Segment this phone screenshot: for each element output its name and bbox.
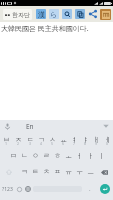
staticText: 2	[17, 141, 20, 146]
button[interactable]: Enter	[96, 179, 113, 199]
staticText: 4	[40, 141, 43, 146]
staticText: ㅕ	[71, 135, 78, 144]
staticText: ㅊ	[43, 167, 50, 176]
staticText: ㅣ	[98, 151, 105, 160]
button[interactable]: ?123	[0, 180, 15, 200]
button[interactable]: More options	[99, 120, 113, 132]
staticText: ㅗ	[65, 151, 72, 160]
button[interactable]: ㅈ	[12, 132, 24, 148]
staticText: ㅔ	[104, 135, 111, 144]
button[interactable]: ㅜ	[74, 164, 85, 180]
staticText: ㄱ	[38, 135, 45, 144]
button[interactable]: ㄹ	[41, 148, 52, 164]
staticText: 大韓民國은 民主共和國이다.	[1, 24, 89, 34]
staticText: 3	[29, 141, 32, 146]
button[interactable]: ㄴ	[19, 148, 30, 164]
staticText: 5	[51, 141, 54, 146]
button[interactable]: Emoji	[15, 180, 24, 200]
staticText: 0	[106, 141, 109, 146]
button[interactable]: Shift	[0, 164, 18, 180]
button[interactable]: ㅎ	[52, 148, 63, 164]
staticText: ㅓ	[76, 151, 83, 160]
button[interactable]: Search	[60, 6, 73, 22]
staticText: ら	[50, 10, 58, 19]
staticText: En	[26, 122, 34, 131]
button[interactable]: ㅏ	[85, 148, 96, 164]
button[interactable]: ㅐ	[91, 132, 102, 148]
staticText: ㅋ	[21, 167, 28, 176]
staticText: 1	[5, 141, 8, 146]
staticText: ㅈ	[15, 135, 22, 144]
staticText: ㅅ	[49, 135, 56, 144]
button[interactable]: Handwriting	[47, 6, 60, 22]
button[interactable]: ㅔ	[102, 132, 113, 148]
staticText: ㄷ	[27, 135, 34, 144]
button[interactable]: ㅓ	[74, 148, 85, 164]
button[interactable]: ㅋ	[18, 164, 30, 180]
staticText: ?123	[2, 186, 13, 193]
button[interactable]: ㅣ	[96, 148, 107, 164]
button[interactable]: ㅑ	[80, 132, 91, 148]
staticText: ㄹ	[43, 151, 50, 160]
staticText: ㅠ	[65, 167, 72, 176]
staticText: ㅜ	[76, 167, 83, 176]
staticText: ㅂ	[3, 135, 10, 144]
button[interactable]: ㅅ	[47, 132, 58, 148]
staticText: ㅡ	[87, 167, 94, 176]
staticText: 한자단	[12, 11, 30, 19]
staticText: 9	[95, 141, 98, 146]
staticText: ㅏ	[87, 151, 94, 160]
staticText: 7	[73, 141, 76, 146]
button[interactable]: ㅌ	[30, 164, 41, 180]
button[interactable]: ㅡ	[85, 164, 96, 180]
staticText: ㅇ	[32, 151, 39, 160]
button[interactable]: ㅇ	[30, 148, 41, 164]
staticText: ㅎ	[54, 151, 61, 160]
button[interactable]: Change language	[24, 180, 32, 200]
button[interactable]: ㅛ	[58, 132, 69, 148]
button[interactable]: 한자단	[3, 9, 32, 20]
button[interactable]: ㅊ	[41, 164, 52, 180]
staticText: 6	[62, 141, 65, 146]
button[interactable]: Copy	[73, 6, 86, 22]
staticText: ㅁ	[10, 151, 17, 160]
staticText: 漢	[38, 10, 45, 19]
button[interactable]: Dictionary	[99, 6, 112, 22]
button[interactable]: ㄷ	[24, 132, 36, 148]
button[interactable]: ㅂ	[0, 132, 12, 148]
staticText: ㄴ	[21, 151, 28, 160]
button[interactable]: Hanja conversion	[34, 6, 47, 22]
button[interactable]: ㄱ	[36, 132, 47, 148]
button[interactable]: ㅁ	[7, 148, 19, 164]
staticText: ㅑ	[82, 135, 89, 144]
staticText: ㅐ	[93, 135, 100, 144]
staticText: ㅌ	[32, 167, 39, 176]
staticText: 8	[84, 141, 87, 146]
button[interactable]: Backspace	[96, 164, 113, 180]
button[interactable]: ㅕ	[69, 132, 80, 148]
staticText: ㅍ	[54, 167, 61, 176]
button[interactable]: ㅍ	[52, 164, 63, 180]
button[interactable]: Share	[86, 6, 99, 22]
staticText: .	[89, 185, 91, 193]
button[interactable]: Voice input	[0, 120, 14, 132]
button[interactable]: ㅗ	[63, 148, 74, 164]
button[interactable]: ㅠ	[63, 164, 74, 180]
staticText: ㅛ	[60, 135, 67, 144]
